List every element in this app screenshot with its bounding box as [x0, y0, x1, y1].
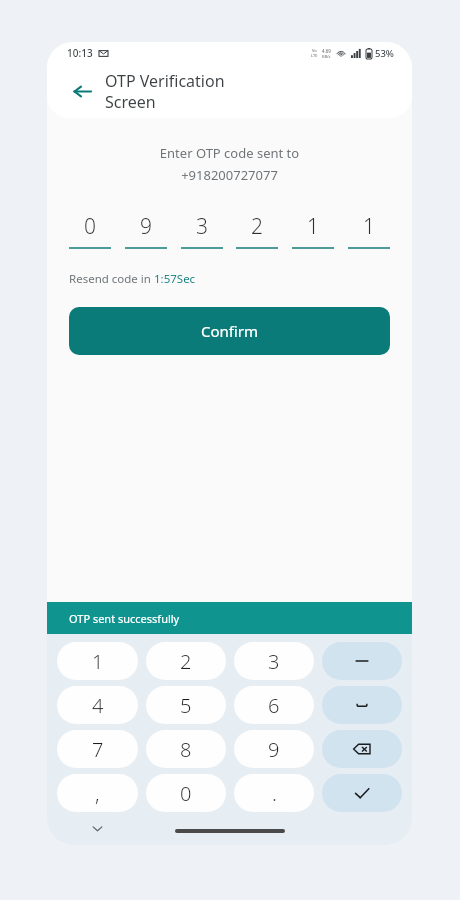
staticText: 1 — [307, 212, 319, 241]
staticText: 3 — [196, 212, 208, 241]
staticText: 2 — [180, 648, 192, 675]
staticText: 6 — [268, 692, 280, 719]
button[interactable]: Minus — [322, 642, 402, 680]
staticText: Confirm — [201, 321, 259, 341]
staticText: 0 — [84, 212, 96, 241]
button[interactable]: Hide keyboard — [85, 816, 109, 840]
button[interactable]: 9 — [234, 730, 314, 768]
staticText: . — [272, 780, 277, 807]
button[interactable]: , — [57, 774, 138, 812]
button[interactable]: Back — [65, 74, 99, 108]
staticText: 2 — [251, 212, 263, 241]
staticText: OTP sent successfully — [69, 611, 180, 626]
staticText: Enter OTP code sent to +918200727077 — [69, 144, 390, 184]
staticText: KB/s — [322, 54, 331, 59]
staticText: 4.69 — [322, 48, 331, 54]
staticText: 1 — [363, 212, 375, 241]
button[interactable]: . — [234, 774, 314, 812]
button[interactable]: 2 — [146, 642, 226, 680]
button[interactable]: 2 — [236, 212, 278, 249]
staticText: 0 — [180, 780, 192, 807]
button[interactable]: 3 — [234, 642, 314, 680]
staticText: OTP Verification Screen — [105, 70, 225, 113]
staticText: 3 — [268, 648, 280, 675]
button[interactable]: 3 — [181, 212, 223, 249]
staticText: , — [95, 780, 100, 807]
button[interactable]: 7 — [57, 730, 138, 768]
button[interactable]: 0 — [146, 774, 226, 812]
staticText: 9 — [268, 736, 280, 763]
staticText: 9 — [140, 212, 152, 241]
staticText: 4 — [92, 692, 104, 719]
button[interactable]: 4 — [57, 686, 138, 724]
staticText: Vo — [312, 48, 317, 53]
button[interactable]: 6 — [234, 686, 314, 724]
button[interactable]: 9 — [125, 212, 167, 249]
staticText: 8 — [180, 736, 192, 763]
staticText: 5 — [180, 692, 192, 719]
button[interactable]: Done — [322, 774, 402, 812]
button[interactable]: 5 — [146, 686, 226, 724]
button[interactable]: 1 — [292, 212, 334, 249]
staticText: 1:57Sec — [154, 271, 196, 287]
staticText: 1 — [92, 648, 104, 675]
button[interactable]: 8 — [146, 730, 226, 768]
button[interactable]: Space — [322, 686, 402, 724]
button[interactable]: Resend code in — [69, 271, 196, 287]
staticText: LTE — [311, 53, 318, 58]
button[interactable]: 0 — [69, 212, 111, 249]
button[interactable]: Backspace — [322, 730, 402, 768]
button[interactable]: 1 — [57, 642, 138, 680]
staticText: 7 — [92, 736, 104, 763]
button[interactable]: Confirm — [69, 307, 390, 355]
staticText: 53% — [375, 47, 394, 60]
staticText: Resend code in — [69, 271, 154, 287]
button[interactable]: 1 — [348, 212, 390, 249]
staticText: 10:13 — [67, 46, 93, 60]
